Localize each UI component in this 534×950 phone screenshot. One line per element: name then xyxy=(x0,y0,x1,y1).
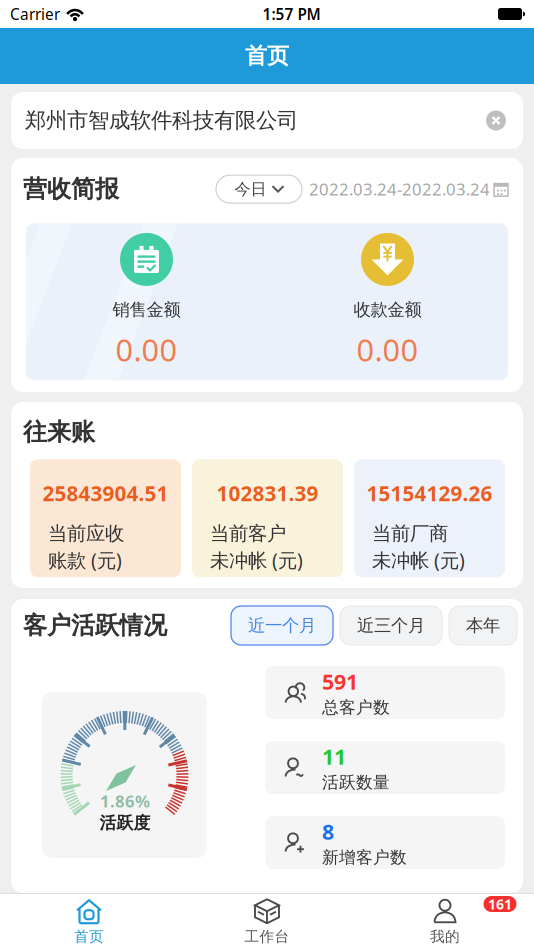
button[interactable]: 工作台 xyxy=(178,894,356,950)
staticText: 当前客户 xyxy=(210,521,286,546)
staticText: 首页 xyxy=(245,42,289,70)
staticText: 工作台 xyxy=(244,927,289,946)
staticText: 0.00 xyxy=(115,329,177,371)
staticText: 1.86% xyxy=(100,790,150,812)
staticText: 收款金额 xyxy=(353,299,421,321)
staticText: 591 xyxy=(322,667,358,696)
staticText: 销售金额 xyxy=(112,299,180,321)
button[interactable]: 近一个月 xyxy=(231,606,333,645)
staticText: 2022.03.24-2022.03.24 xyxy=(309,178,490,200)
staticText: 25843904.51 xyxy=(42,479,168,507)
staticText: 活跃数量 xyxy=(322,772,390,793)
staticText: 往来账 xyxy=(23,417,95,447)
staticText: 8 xyxy=(322,817,334,846)
staticText: 总客户数 xyxy=(322,697,390,718)
staticText: 活跃度 xyxy=(99,812,150,833)
staticText: 郑州市智成软件科技有限公司 xyxy=(25,107,298,134)
staticText: 未冲帐 (元) xyxy=(210,547,303,573)
staticText: 本年 xyxy=(466,615,500,636)
staticText: 今日 xyxy=(234,179,266,199)
staticText: 当前应收 xyxy=(48,521,124,546)
button[interactable]: 近三个月 xyxy=(340,606,442,645)
staticText: 11 xyxy=(322,742,346,771)
staticText: 账款 (元) xyxy=(48,547,122,573)
staticText: 15154129.26 xyxy=(366,479,492,507)
button[interactable]: 今日 xyxy=(216,175,302,203)
staticText: 新增客户数 xyxy=(322,847,407,868)
staticText: 近一个月 xyxy=(248,615,316,636)
staticText: 161 xyxy=(488,894,512,914)
staticText: 营收简报 xyxy=(23,174,119,204)
staticText: 1:57 PM xyxy=(262,4,320,24)
button[interactable]: 11 xyxy=(265,741,505,794)
staticText: 未冲帐 (元) xyxy=(372,547,465,573)
button[interactable]: 郑州市智成软件科技有限公司 xyxy=(11,92,523,149)
staticText: 近三个月 xyxy=(357,615,425,636)
staticText: 客户活跃情况 xyxy=(23,610,167,641)
staticText: 0.00 xyxy=(356,329,418,371)
button[interactable]: 2022.03.24-2022.03.24 xyxy=(302,178,523,200)
button[interactable]: 首页 xyxy=(0,894,178,950)
button[interactable]: 我的 xyxy=(356,894,534,950)
button[interactable]: 591 xyxy=(265,666,505,719)
staticText: 102831.39 xyxy=(216,479,318,507)
staticText: 我的 xyxy=(430,927,460,946)
button[interactable]: 清除 xyxy=(486,110,506,130)
button[interactable]: 本年 xyxy=(449,606,517,645)
staticText: 首页 xyxy=(74,927,104,946)
staticText: 当前厂商 xyxy=(372,521,448,546)
button[interactable]: 8 xyxy=(265,816,505,869)
staticText: Carrier xyxy=(10,4,60,24)
